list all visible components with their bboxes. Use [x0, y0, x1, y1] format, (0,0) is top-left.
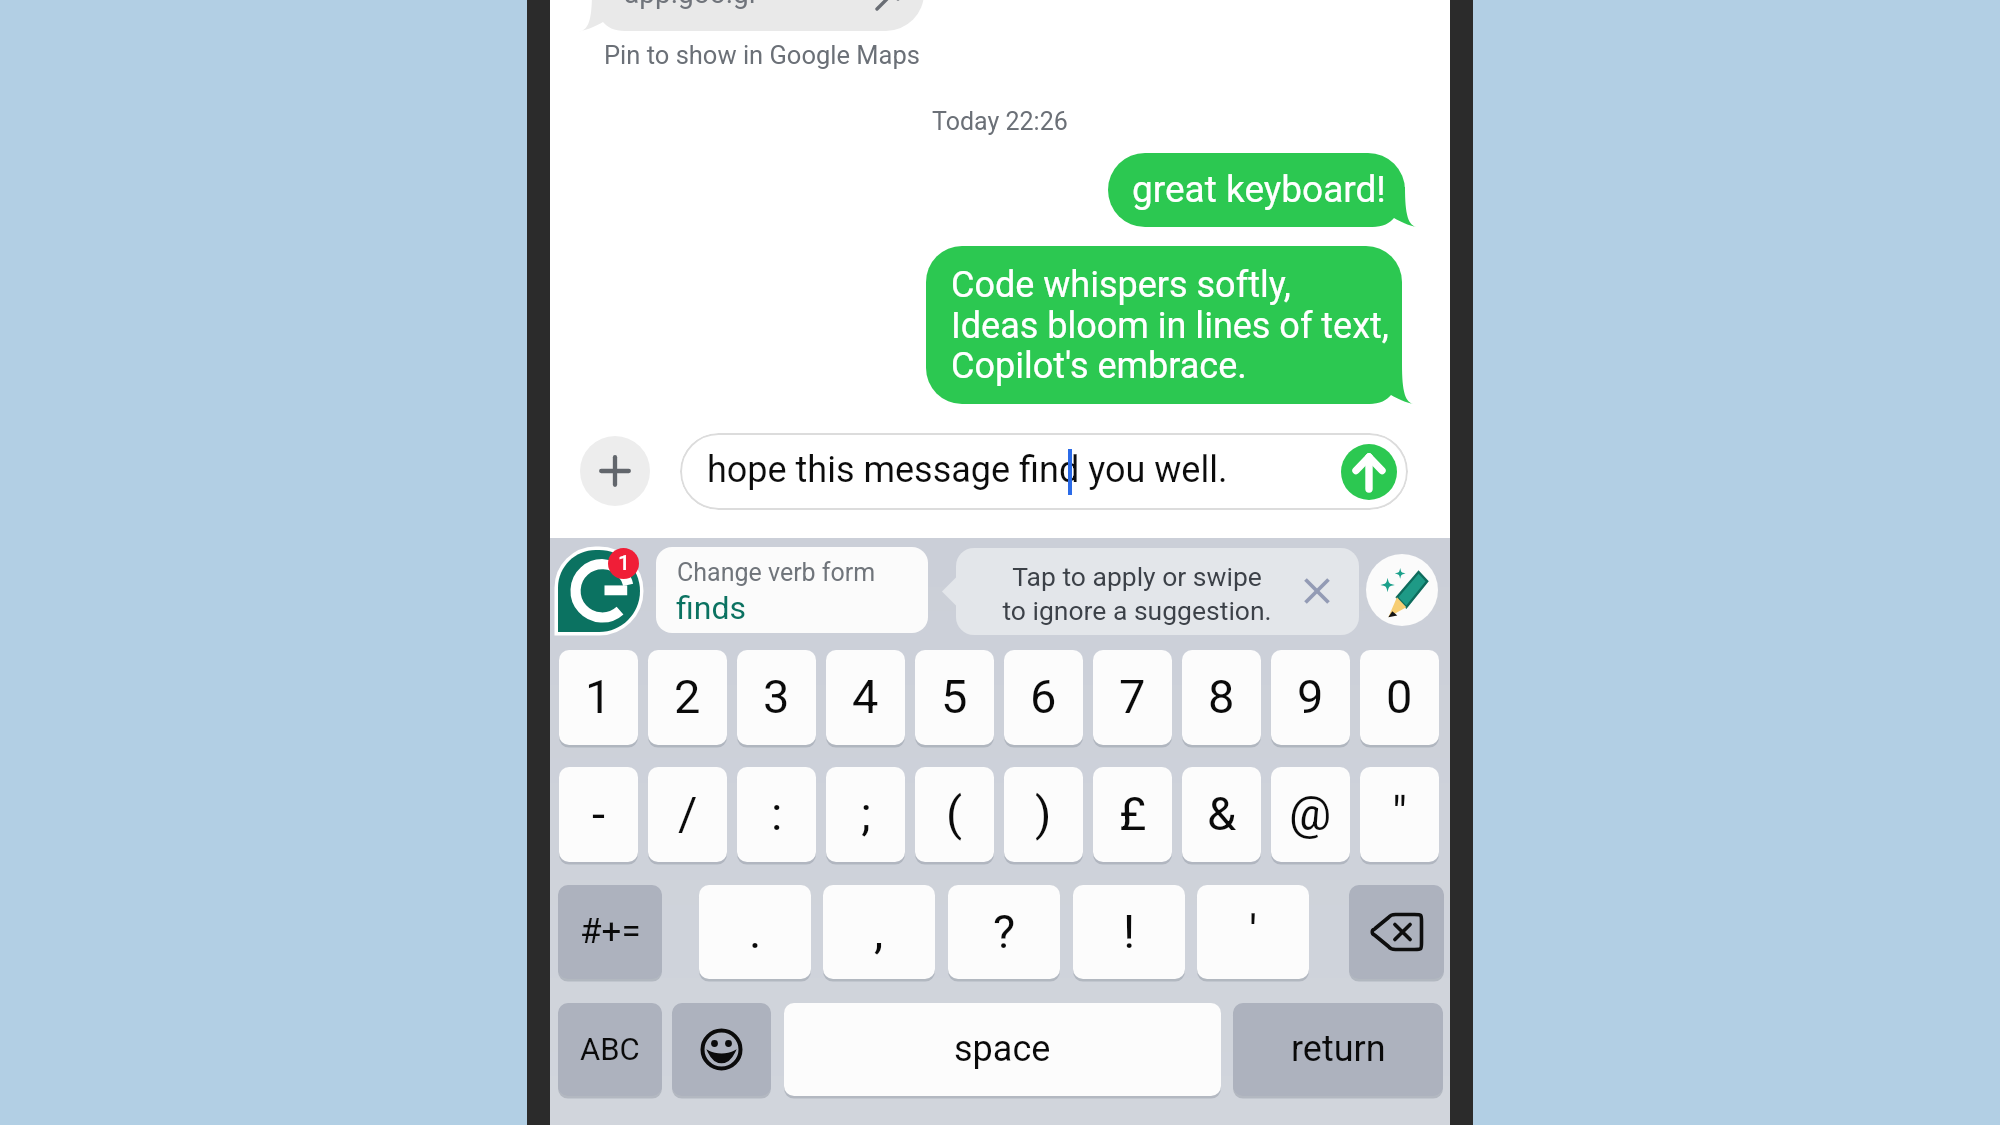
staticText: : — [771, 786, 783, 841]
staticText: @ — [1289, 786, 1332, 841]
staticText: great keyboard! — [1132, 168, 1386, 211]
button[interactable]: . — [699, 885, 811, 979]
staticText: ; — [861, 786, 871, 841]
staticText: finds — [676, 589, 746, 627]
staticText: Change verb form — [677, 558, 876, 587]
staticText: 4 — [852, 669, 879, 724]
staticText: ' — [1249, 904, 1258, 959]
button[interactable]: Grammarly assistant — [1366, 554, 1438, 626]
staticText: . — [749, 904, 762, 959]
button[interactable]: ? — [948, 885, 1060, 979]
button[interactable]: ; — [826, 767, 905, 862]
button[interactable]: ) — [1004, 767, 1083, 862]
staticText: & — [1207, 786, 1237, 841]
button[interactable]: - — [559, 767, 638, 862]
button[interactable]: ! — [1073, 885, 1185, 979]
button[interactable]: : — [737, 767, 816, 862]
staticText: 0 — [1386, 669, 1413, 724]
button[interactable]: ABC — [558, 1003, 662, 1096]
button[interactable]: 5 — [915, 650, 994, 745]
button[interactable]: ( — [915, 767, 994, 862]
staticText: ) — [1035, 786, 1052, 841]
staticText: Pin to show in Google Maps — [604, 40, 920, 70]
button[interactable]: 9 — [1271, 650, 1350, 745]
button[interactable]: 7 — [1093, 650, 1172, 745]
button[interactable]: Backspace — [1349, 885, 1444, 979]
button[interactable]: @ — [1271, 767, 1350, 862]
staticText: app.goo.gl — [624, 0, 756, 10]
button[interactable]: Emoji keyboard — [672, 1003, 771, 1096]
button[interactable]: 3 — [737, 650, 816, 745]
staticText: Today 22:26 — [932, 107, 1068, 136]
button[interactable]: hope this message find you well. — [680, 433, 1408, 510]
staticText: 3 — [763, 669, 790, 724]
staticText: ? — [993, 904, 1016, 959]
staticText: hope this message find you well. — [707, 449, 1228, 491]
button[interactable]: return — [1233, 1003, 1443, 1096]
staticText: #+= — [580, 911, 641, 952]
button[interactable]: 0 — [1360, 650, 1439, 745]
staticText: 2 — [674, 669, 701, 724]
staticText: £ — [1119, 786, 1147, 841]
button[interactable]: & — [1182, 767, 1261, 862]
button[interactable]: / — [648, 767, 727, 862]
staticText: , — [874, 904, 884, 959]
button[interactable]: Add attachment — [580, 436, 650, 506]
button[interactable]: #+= — [558, 885, 662, 979]
button[interactable]: Change verb form — [656, 547, 928, 633]
staticText: ( — [946, 786, 963, 841]
staticText: 8 — [1208, 669, 1235, 724]
button[interactable]: " — [1360, 767, 1439, 862]
staticText: 6 — [1030, 669, 1057, 724]
staticText: space — [954, 1028, 1051, 1070]
button[interactable]: ' — [1197, 885, 1309, 979]
staticText: 1 — [585, 669, 612, 724]
staticText: return — [1291, 1028, 1386, 1070]
staticText: ABC — [580, 1031, 640, 1067]
button[interactable]: 6 — [1004, 650, 1083, 745]
button[interactable]: Send — [1341, 444, 1397, 500]
staticText: - — [592, 786, 605, 841]
button[interactable]: 8 — [1182, 650, 1261, 745]
staticText: / — [678, 786, 698, 841]
button[interactable]: space — [784, 1003, 1221, 1096]
staticText: 1 — [618, 551, 630, 576]
staticText: Code whispers softly, Ideas bloom in lin… — [951, 264, 1389, 387]
staticText: 9 — [1297, 669, 1324, 724]
staticText: Tap to apply or swipe to ignore a sugges… — [992, 561, 1282, 626]
button[interactable]: 4 — [826, 650, 905, 745]
staticText: " — [1392, 786, 1408, 841]
staticText: ! — [1123, 904, 1136, 959]
button[interactable]: £ — [1093, 767, 1172, 862]
staticText: 5 — [941, 669, 968, 724]
button[interactable]: 2 — [648, 650, 727, 745]
staticText: 7 — [1119, 669, 1146, 724]
button[interactable]: 1 — [559, 650, 638, 745]
button[interactable]: , — [823, 885, 935, 979]
